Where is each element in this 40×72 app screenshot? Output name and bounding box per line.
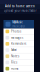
staticText: MyMusic: [12, 21, 22, 24]
staticText: Home: [11, 67, 19, 70]
button[interactable]: Files: [3, 59, 34, 66]
staticText: Safari: [11, 48, 17, 52]
button[interactable]: Home: [3, 66, 34, 72]
staticText: Files: [11, 61, 17, 64]
staticText: music.app: [12, 24, 25, 28]
button[interactable]: Reminders: [3, 41, 34, 47]
staticText: Add to home screen: [5, 4, 35, 8]
staticText: upload your music faster: [3, 9, 36, 12]
staticText: Photos: [11, 30, 21, 33]
staticText: Reminders: [11, 42, 26, 46]
staticText: Messages: [11, 36, 23, 39]
button[interactable]: Safari: [3, 47, 34, 53]
button[interactable]: Notes: [3, 53, 34, 59]
button[interactable]: Messages: [3, 35, 34, 41]
button[interactable]: Photos: [3, 28, 34, 35]
staticText: Notes: [11, 54, 19, 58]
